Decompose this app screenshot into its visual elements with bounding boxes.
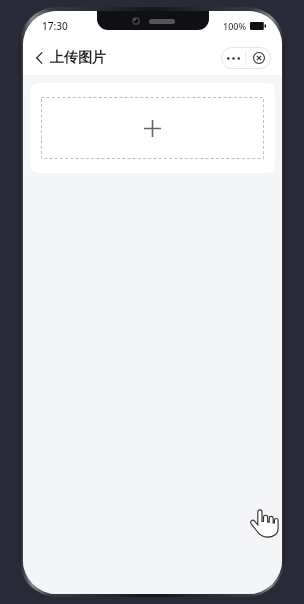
button[interactable]: Back bbox=[31, 46, 110, 70]
button[interactable]: Add image bbox=[41, 97, 264, 159]
button[interactable]: Close bbox=[246, 47, 271, 69]
staticText: 17:30 bbox=[42, 19, 68, 33]
staticText: 上传图片 bbox=[50, 49, 106, 67]
staticText: 100% bbox=[223, 20, 247, 32]
button[interactable]: More bbox=[221, 47, 246, 69]
